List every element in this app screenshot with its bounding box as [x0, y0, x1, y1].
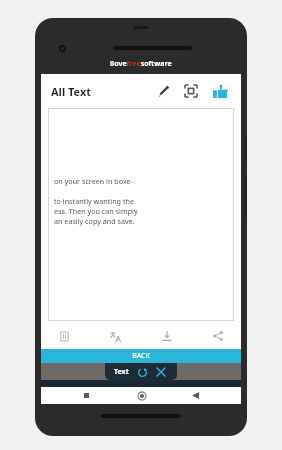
button[interactable]: Recents — [78, 387, 95, 404]
button[interactable]: Download — [156, 325, 178, 347]
button[interactable]: on your screen in boxe- — [48, 108, 234, 321]
staticText: ilovefreesoftware — [110, 59, 172, 69]
button[interactable]: Refresh — [135, 365, 149, 379]
button[interactable]: BACK — [41, 349, 241, 363]
button[interactable]: Close — [154, 365, 168, 379]
button[interactable]: Select all — [179, 79, 203, 103]
button[interactable]: Copy — [53, 325, 75, 347]
staticText: Text — [114, 367, 129, 377]
button[interactable]: Home — [133, 387, 150, 404]
staticText: BACK — [132, 351, 150, 361]
button[interactable]: Back — [187, 387, 204, 404]
staticText: on your screen in boxe- — [54, 176, 133, 186]
button[interactable]: Share — [207, 325, 229, 347]
button[interactable]: Translate — [104, 325, 126, 347]
staticText: to instantly wanting the ess. Then you c… — [54, 196, 138, 226]
button[interactable]: Edit — [151, 79, 175, 103]
button[interactable]: Text — [105, 363, 177, 380]
button[interactable]: Like — [207, 78, 233, 104]
staticText: All Text — [51, 84, 92, 99]
